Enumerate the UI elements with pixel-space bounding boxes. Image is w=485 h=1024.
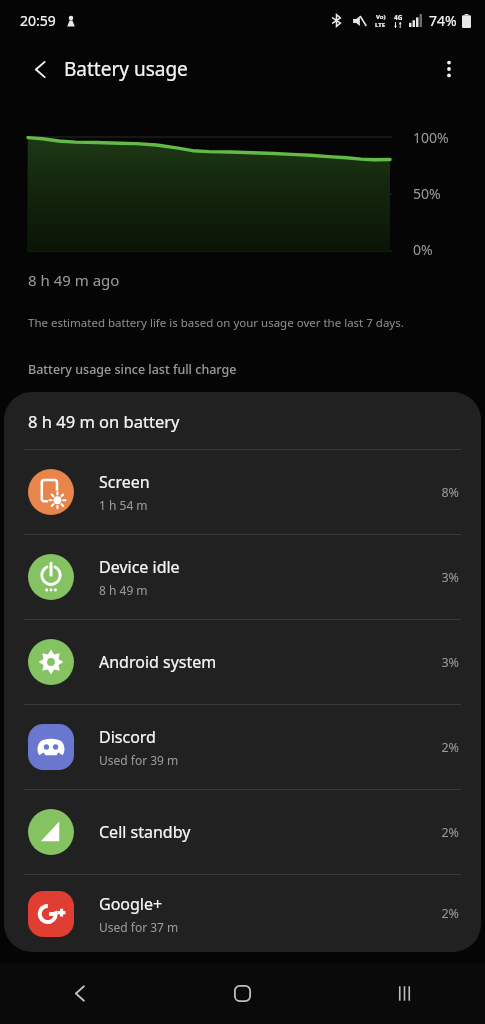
staticText: 0%	[413, 240, 433, 259]
button[interactable]: Back	[18, 47, 62, 91]
staticText: Device idle	[99, 556, 180, 578]
staticText: 8 h 49 m on battery	[28, 410, 180, 432]
button[interactable]: Discord	[4, 705, 481, 789]
button[interactable]: Google+	[4, 875, 481, 952]
staticText: 2%	[441, 824, 459, 841]
staticText: 50%	[413, 184, 441, 203]
staticText: 8 h 49 m ago	[28, 270, 120, 290]
staticText: Cell standby	[99, 821, 191, 843]
staticText: 74%	[429, 11, 457, 30]
staticText: The estimated battery life is based on y…	[28, 315, 404, 331]
button[interactable]: Recent apps	[323, 963, 485, 1024]
staticText: Discord	[99, 726, 156, 748]
staticText: Android system	[99, 651, 217, 673]
button[interactable]: Back	[0, 963, 161, 1024]
staticText: 2%	[441, 905, 459, 922]
staticText: 20:59	[20, 11, 56, 30]
button[interactable]: Cell standby	[4, 790, 481, 874]
staticText: Used for 37 m	[99, 919, 179, 935]
staticText: 3%	[441, 654, 459, 671]
staticText: 100%	[413, 128, 449, 147]
staticText: 1 h 54 m	[99, 497, 148, 513]
staticText: Battery usage	[64, 56, 188, 82]
button[interactable]: Screen	[4, 450, 481, 534]
staticText: LTE	[375, 21, 386, 29]
button[interactable]: Device idle	[4, 535, 481, 619]
staticText: Battery usage since last full charge	[28, 361, 237, 378]
staticText: Vo)	[376, 13, 386, 21]
button[interactable]: Home	[161, 963, 323, 1024]
staticText: 3%	[441, 569, 459, 586]
staticText: 4G	[394, 13, 403, 22]
staticText: 2%	[441, 739, 459, 756]
staticText: Google+	[99, 893, 163, 915]
button[interactable]: More options	[427, 47, 471, 91]
staticText: Used for 39 m	[99, 752, 179, 768]
staticText: 8%	[441, 484, 459, 501]
staticText: Screen	[99, 471, 150, 493]
button[interactable]: Android system	[4, 620, 481, 704]
staticText: 8 h 49 m	[99, 582, 148, 598]
